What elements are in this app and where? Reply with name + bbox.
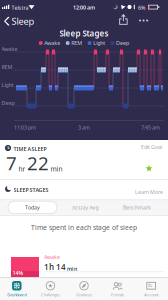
staticText: Sleep Stages — [59, 28, 108, 39]
staticText: Sleep — [11, 15, 34, 27]
staticText: 7 — [6, 150, 17, 175]
staticText: 22 — [27, 150, 49, 175]
staticText: 11:03 pm — [14, 124, 36, 131]
staticText: Dashboard — [7, 292, 26, 297]
staticText: 3 am — [78, 124, 90, 131]
staticText: 12:00 am — [73, 4, 95, 11]
staticText: min — [67, 265, 77, 272]
staticText: Challenges — [41, 292, 60, 297]
staticText: min — [50, 164, 62, 173]
button[interactable]: Edit Goal — [139, 141, 164, 153]
staticText: Edit Goal — [141, 143, 162, 151]
staticText: Deep — [116, 39, 129, 47]
staticText: REM — [71, 39, 82, 47]
button[interactable]: Today — [8, 201, 57, 214]
staticText: Deep — [1, 99, 14, 107]
staticText: Awake — [44, 39, 60, 47]
staticText: hr — [18, 164, 25, 173]
button[interactable]: Share — [117, 14, 130, 27]
staticText: Light — [1, 81, 13, 89]
staticText: 7:45 am — [141, 124, 160, 131]
staticText: Awake — [1, 45, 17, 53]
staticText: Light — [93, 39, 105, 47]
staticText: Guidance — [76, 292, 92, 297]
button[interactable]: Account — [135, 278, 168, 300]
staticText: Telstra — [11, 4, 28, 11]
button[interactable]: Challenges — [34, 278, 67, 300]
staticText: 1h 14 — [44, 261, 66, 272]
staticText: 14% — [12, 269, 23, 277]
staticText: SLEEP STAGES — [13, 186, 48, 194]
staticText: REM — [1, 63, 12, 71]
button[interactable]: Learn More — [133, 186, 165, 198]
staticText: Today — [25, 204, 40, 211]
button[interactable]: Friends — [101, 278, 134, 300]
staticText: Awake — [44, 253, 60, 261]
button[interactable]: Benchmark — [112, 201, 162, 214]
staticText: Account — [144, 292, 158, 297]
button[interactable]: More — [137, 17, 150, 23]
staticText: Learn More — [135, 188, 163, 196]
button[interactable]: Back — [0, 13, 34, 29]
button[interactable]: Guidance — [67, 278, 100, 300]
button[interactable]: Dashboard — [0, 278, 33, 300]
staticText: Time spent in each stage of sleep — [31, 223, 137, 232]
staticText: 6% — [138, 4, 145, 11]
staticText: TIME ASLEEP — [13, 145, 46, 153]
button[interactable]: 30 Day Avg — [60, 201, 110, 214]
staticText: Friends — [111, 292, 124, 297]
staticText: Benchmark — [123, 204, 151, 211]
staticText: 30 Day Avg — [71, 204, 98, 211]
